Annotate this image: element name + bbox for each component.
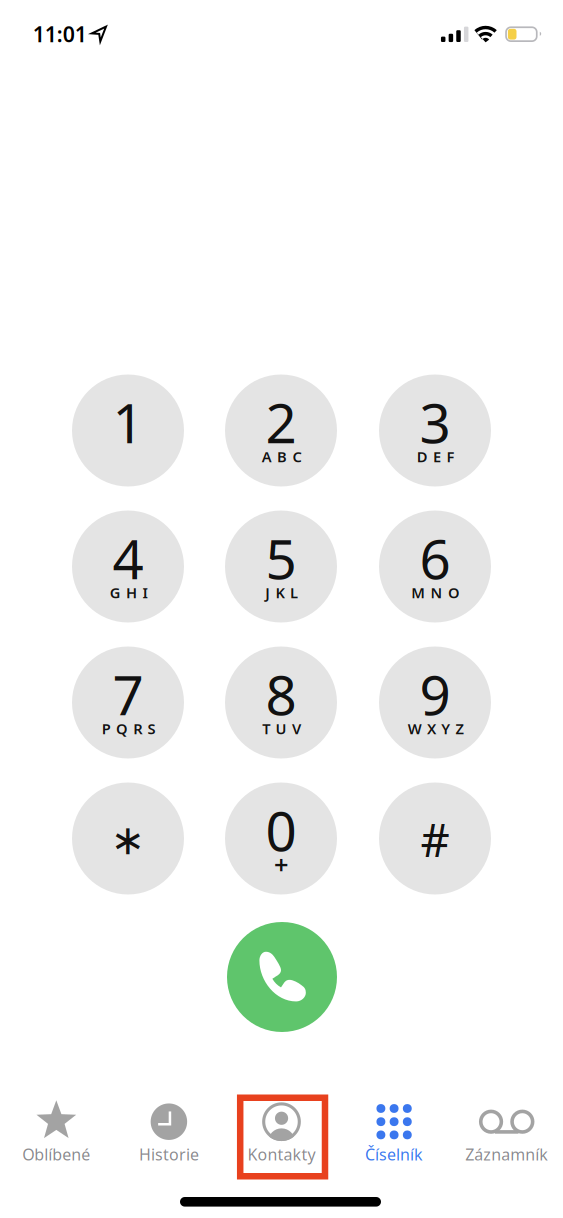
button[interactable]: 4 [72, 510, 184, 622]
button[interactable]: 7 [72, 646, 184, 758]
button[interactable]: # [379, 782, 491, 894]
button[interactable]: Oblíbené [0, 1095, 113, 1180]
staticText: WXYZ [408, 719, 464, 738]
staticText: Oblíbené [22, 1144, 90, 1165]
staticText: DEF [417, 447, 454, 466]
staticText: 6 [419, 522, 450, 594]
button[interactable]: Číselník [338, 1095, 450, 1180]
button[interactable]: 8 [225, 646, 337, 758]
staticText: 7 [112, 658, 143, 730]
button[interactable]: 0 [225, 782, 337, 894]
staticText: 2 [265, 386, 296, 458]
button[interactable]: 6 [379, 510, 491, 622]
button[interactable]: Kontakty [225, 1095, 338, 1180]
button[interactable]: 3 [379, 374, 491, 486]
staticText: Číselník [365, 1144, 423, 1165]
staticText: PQRS [102, 719, 156, 738]
button[interactable]: ∗ [72, 782, 184, 894]
staticText: TUV [262, 719, 301, 738]
staticText: 4 [112, 522, 143, 594]
staticText: Kontakty [247, 1144, 315, 1165]
button[interactable]: 2 [225, 374, 337, 486]
button[interactable]: 1 [72, 374, 184, 486]
staticText: GHI [110, 583, 147, 602]
staticText: 0 [265, 794, 296, 866]
staticText: ABC [262, 447, 301, 466]
staticText: 8 [265, 658, 296, 730]
staticText: 1 [112, 386, 143, 458]
staticText: MNO [411, 583, 460, 602]
staticText: 11:01 [33, 20, 87, 48]
staticText: Záznamník [465, 1144, 548, 1165]
button[interactable]: 5 [225, 510, 337, 622]
staticText: + [274, 847, 288, 881]
button[interactable]: Call [227, 922, 337, 1032]
button[interactable]: 9 [379, 646, 491, 758]
button[interactable]: Záznamník [450, 1095, 563, 1180]
staticText: JKL [265, 583, 298, 602]
staticText: ∗ [110, 816, 145, 863]
staticText: 5 [265, 522, 296, 594]
staticText: 3 [419, 386, 450, 458]
staticText: 9 [419, 658, 450, 730]
staticText: # [420, 809, 449, 870]
staticText: Historie [139, 1144, 199, 1165]
button[interactable]: Historie [113, 1095, 225, 1180]
